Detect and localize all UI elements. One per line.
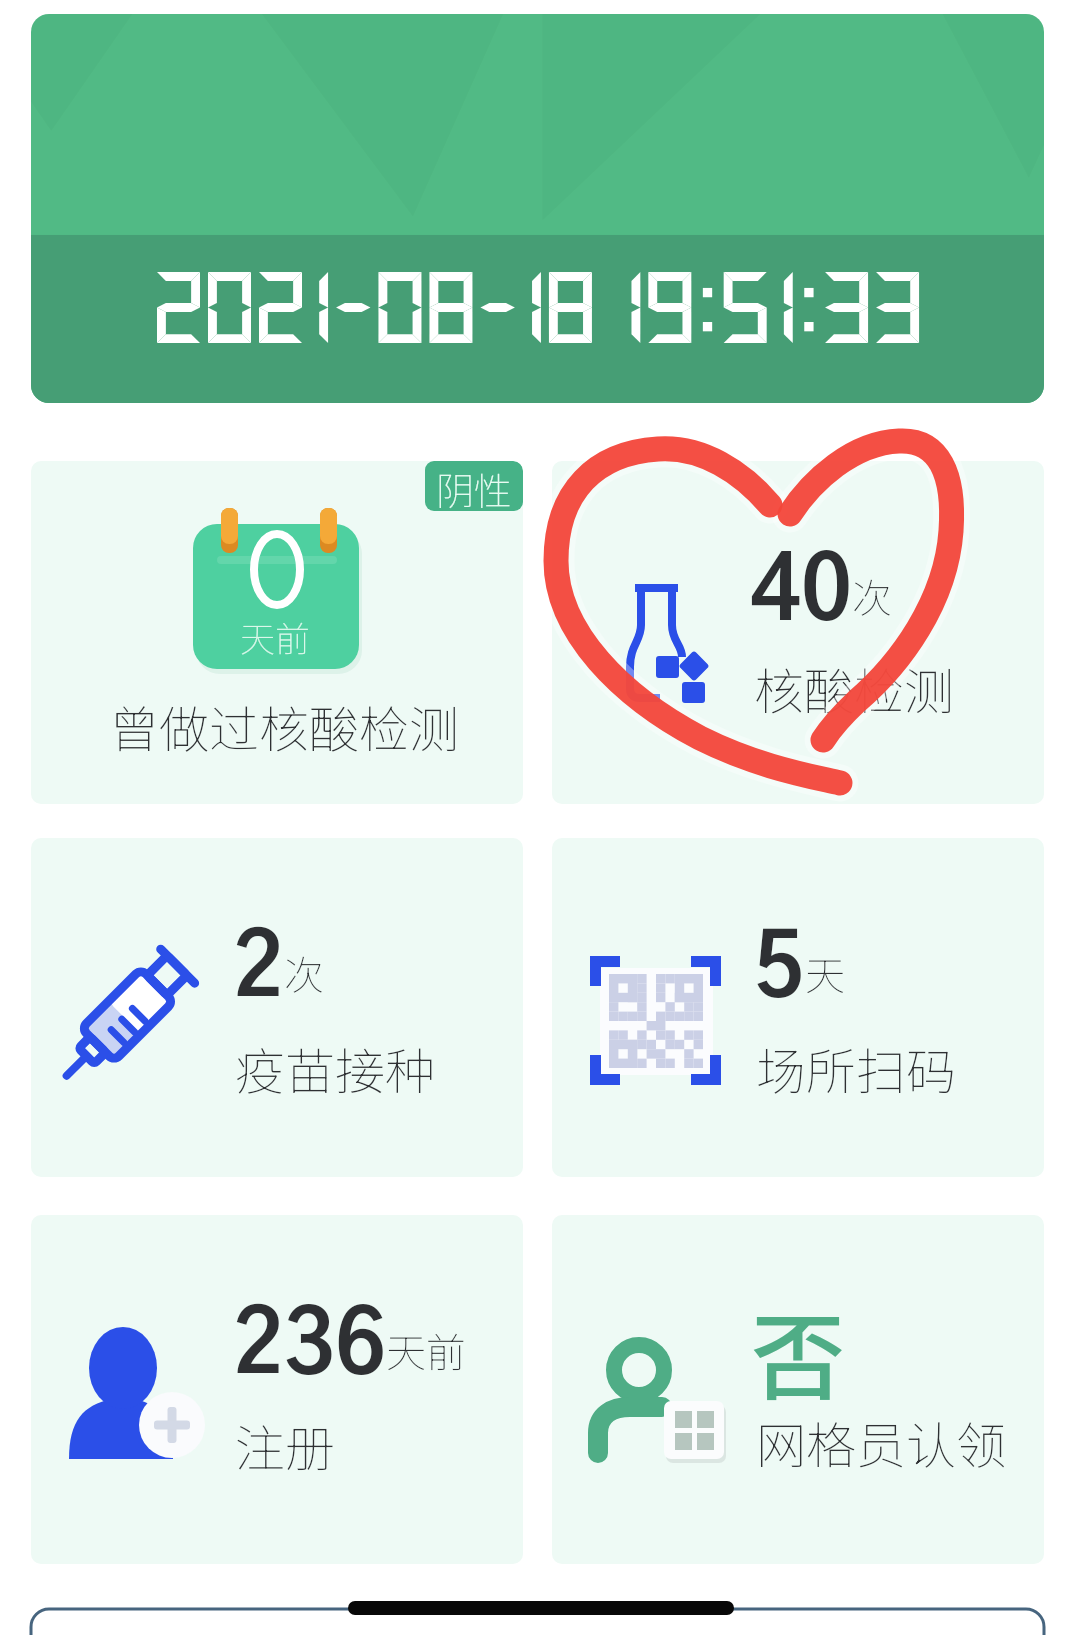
staticText: 2 <box>233 927 284 1014</box>
staticText: 236 <box>233 1304 386 1391</box>
staticText: 场所扫码 <box>756 1032 956 1104</box>
staticText: 天前 <box>240 611 311 662</box>
button[interactable]: 阴性 <box>31 461 523 804</box>
staticText: 阴性 <box>436 461 513 511</box>
staticText: 5 <box>754 927 805 1014</box>
staticText: 核酸检测 <box>754 652 954 724</box>
staticText: 注册 <box>235 1409 335 1481</box>
button[interactable]: Health code time <box>31 14 1044 403</box>
staticText: 40 <box>750 550 852 637</box>
staticText: 天前 <box>386 1321 466 1379</box>
button[interactable]: 阴性 <box>425 461 523 511</box>
staticText: 次 <box>284 944 324 1002</box>
button[interactable]: 2 <box>31 838 523 1177</box>
staticText: 天 <box>805 944 845 1002</box>
staticText: 次 <box>852 567 892 625</box>
staticText: 疫苗接种 <box>235 1032 435 1104</box>
button[interactable]: 40 <box>552 461 1044 804</box>
staticText: 否 <box>751 1283 846 1419</box>
button[interactable]: 5 <box>552 838 1044 1177</box>
staticText: 网格员认领 <box>756 1406 1006 1478</box>
button[interactable]: 否 <box>552 1215 1044 1564</box>
staticText: 曾做过核酸检测 <box>109 690 459 762</box>
button[interactable]: 236 <box>31 1215 523 1564</box>
